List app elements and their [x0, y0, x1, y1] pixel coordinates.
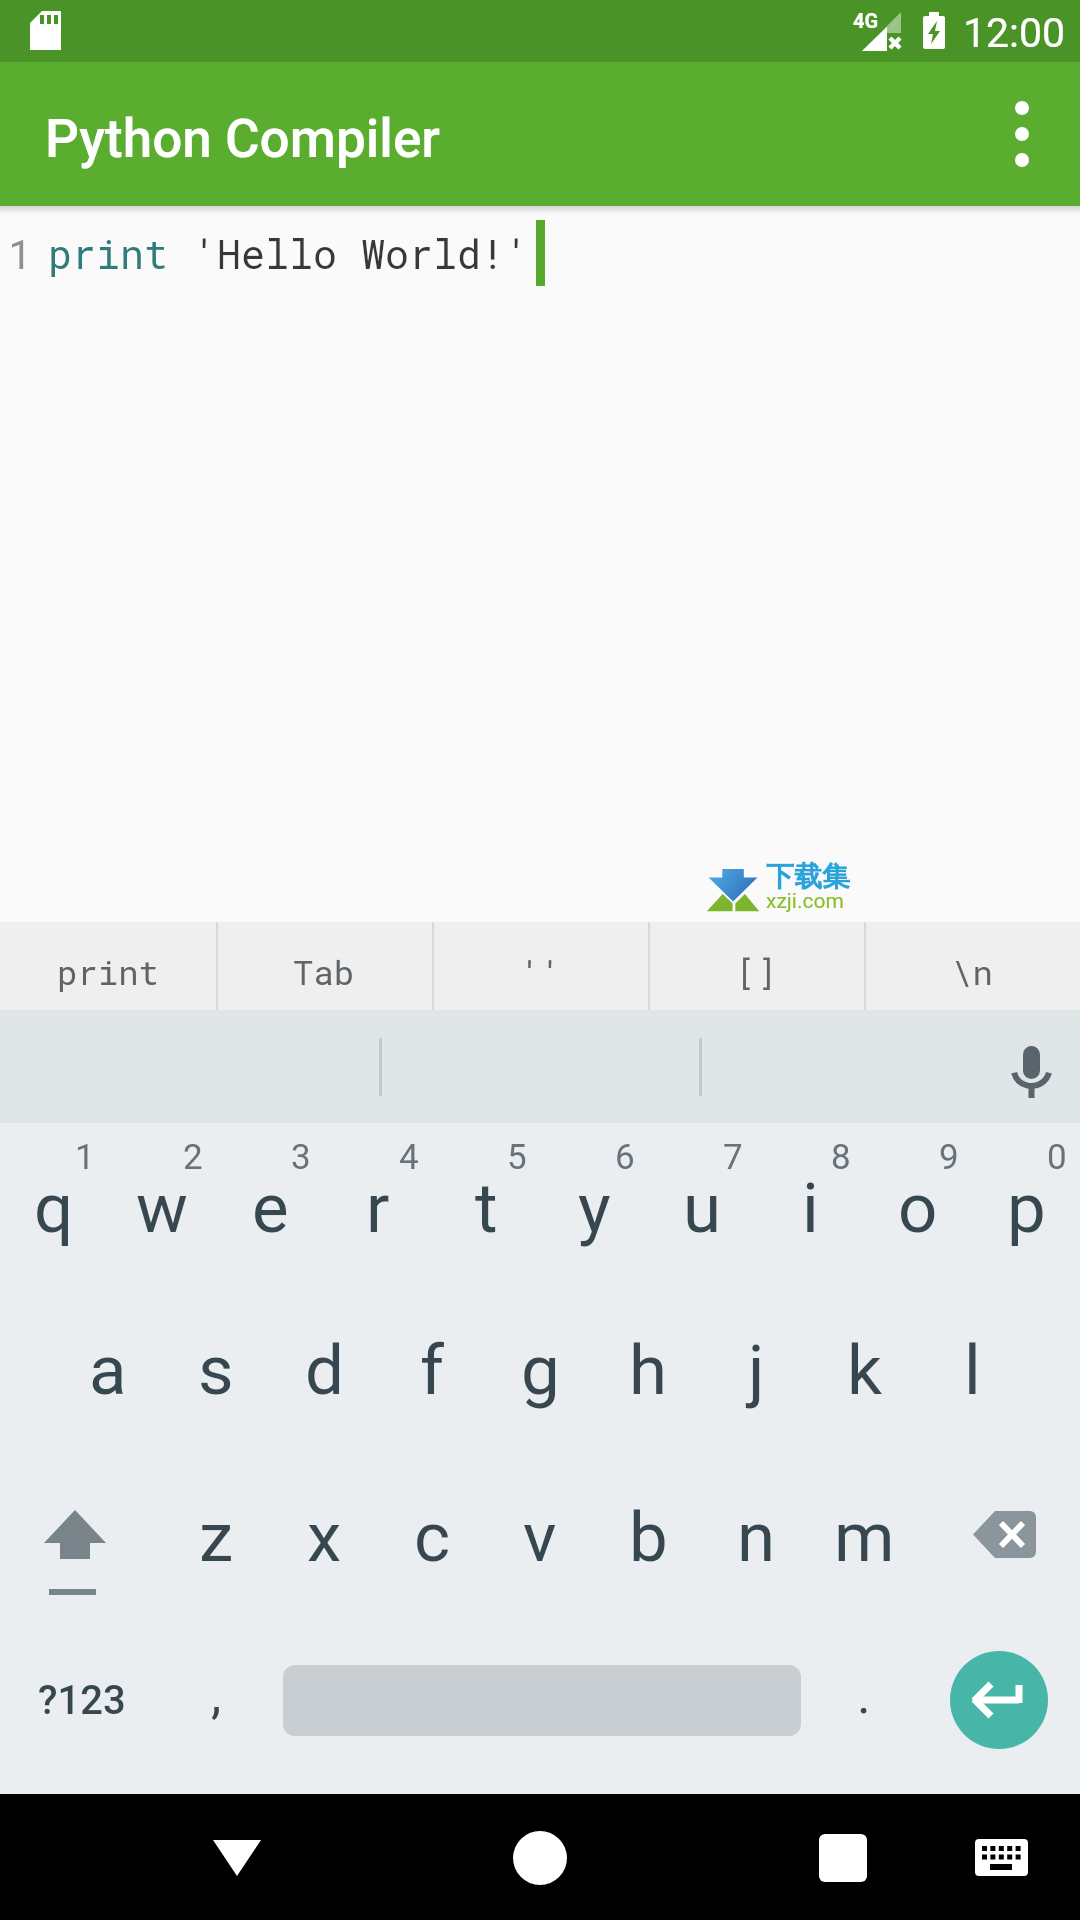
- staticText: ?123: [38, 1677, 126, 1724]
- staticText: c: [414, 1497, 451, 1578]
- button[interactable]: [0, 1010, 1080, 1123]
- staticText: n: [737, 1497, 776, 1578]
- button[interactable]: w: [108, 1153, 216, 1263]
- button[interactable]: 0: [972, 1137, 1080, 1183]
- button[interactable]: e: [216, 1153, 324, 1263]
- staticText: m: [834, 1497, 895, 1578]
- button[interactable]: 6: [540, 1137, 648, 1183]
- button[interactable]: \n: [864, 922, 1080, 1010]
- staticText: f: [420, 1330, 444, 1411]
- staticText: '': [520, 949, 561, 994]
- staticText: s: [198, 1330, 234, 1411]
- staticText: g: [521, 1330, 560, 1411]
- button[interactable]: m: [810, 1482, 918, 1592]
- button[interactable]: p: [972, 1153, 1080, 1263]
- button[interactable]: i: [756, 1153, 864, 1263]
- staticText: 12:00: [963, 9, 1066, 57]
- staticText: 2: [183, 1137, 203, 1178]
- button[interactable]: [0, 1794, 360, 1920]
- button[interactable]: 1: [0, 1137, 108, 1183]
- staticText: 9: [939, 1137, 959, 1178]
- button[interactable]: [918, 1482, 1080, 1592]
- staticText: e: [252, 1168, 289, 1249]
- staticText: 0: [1047, 1137, 1067, 1178]
- button[interactable]: ?123: [12, 1645, 152, 1755]
- button[interactable]: y: [540, 1153, 648, 1263]
- button[interactable]: g: [486, 1315, 594, 1425]
- button[interactable]: .: [810, 1640, 918, 1750]
- button[interactable]: 3: [216, 1137, 324, 1183]
- button[interactable]: d: [270, 1315, 378, 1425]
- staticText: .: [857, 1665, 871, 1726]
- button[interactable]: r: [324, 1153, 432, 1263]
- button[interactable]: q: [0, 1153, 108, 1263]
- staticText: print: [57, 949, 160, 994]
- staticText: u: [683, 1168, 722, 1249]
- staticText: p: [1007, 1168, 1046, 1249]
- button[interactable]: n: [702, 1482, 810, 1592]
- button[interactable]: print: [0, 922, 216, 1010]
- button[interactable]: a: [54, 1315, 162, 1425]
- staticText: 'Hello World!': [169, 227, 530, 280]
- staticText: b: [629, 1497, 668, 1578]
- staticText: y: [578, 1168, 611, 1249]
- button[interactable]: z: [162, 1482, 270, 1592]
- staticText: v: [523, 1497, 557, 1578]
- button[interactable]: ,: [162, 1640, 270, 1750]
- button[interactable]: 1: [8, 220, 545, 286]
- staticText: Tab: [293, 949, 355, 994]
- button[interactable]: [984, 86, 1080, 182]
- staticText: print: [48, 227, 169, 280]
- staticText: t: [475, 1168, 498, 1249]
- button[interactable]: b: [594, 1482, 702, 1592]
- staticText: 1: [75, 1137, 95, 1178]
- button[interactable]: 2: [108, 1137, 216, 1183]
- button[interactable]: u: [648, 1153, 756, 1263]
- button[interactable]: o: [864, 1153, 972, 1263]
- staticText: ,: [211, 1665, 222, 1726]
- button[interactable]: [0, 1482, 162, 1592]
- staticText: x: [307, 1497, 342, 1578]
- staticText: z: [199, 1497, 234, 1578]
- button[interactable]: [720, 1794, 1080, 1920]
- button[interactable]: c: [378, 1482, 486, 1592]
- button[interactable]: 7: [648, 1137, 756, 1183]
- button[interactable]: 8: [756, 1137, 864, 1183]
- staticText: \n: [952, 949, 993, 994]
- staticText: 8: [831, 1137, 851, 1178]
- button[interactable]: l: [918, 1315, 1026, 1425]
- staticText: xzji.com: [766, 889, 844, 914]
- button[interactable]: [946, 1647, 1052, 1753]
- button[interactable]: j: [702, 1315, 810, 1425]
- button[interactable]: x: [270, 1482, 378, 1592]
- staticText: l: [964, 1330, 981, 1411]
- staticText: w: [136, 1168, 188, 1249]
- staticText: j: [748, 1330, 765, 1411]
- staticText: 下载集: [766, 859, 850, 894]
- staticText: i: [802, 1168, 819, 1249]
- staticText: 7: [723, 1137, 743, 1178]
- button[interactable]: [360, 1794, 720, 1920]
- button[interactable]: 4: [324, 1137, 432, 1183]
- button[interactable]: t: [432, 1153, 540, 1263]
- button[interactable]: '': [432, 922, 648, 1010]
- button[interactable]: []: [648, 922, 864, 1010]
- button[interactable]: Tab: [216, 922, 432, 1010]
- button[interactable]: h: [594, 1315, 702, 1425]
- button[interactable]: f: [378, 1315, 486, 1425]
- staticText: r: [366, 1168, 390, 1249]
- staticText: d: [305, 1330, 344, 1411]
- button[interactable]: 5: [432, 1137, 540, 1183]
- staticText: q: [34, 1168, 74, 1249]
- staticText: 4G: [853, 9, 879, 32]
- staticText: 1: [8, 227, 33, 280]
- staticText: 6: [615, 1137, 635, 1178]
- staticText: 5: [507, 1137, 527, 1178]
- button[interactable]: 9: [864, 1137, 972, 1183]
- button[interactable]: k: [810, 1315, 918, 1425]
- staticText: a: [89, 1330, 127, 1411]
- staticText: []: [736, 949, 777, 994]
- button[interactable]: v: [486, 1482, 594, 1592]
- button[interactable]: s: [162, 1315, 270, 1425]
